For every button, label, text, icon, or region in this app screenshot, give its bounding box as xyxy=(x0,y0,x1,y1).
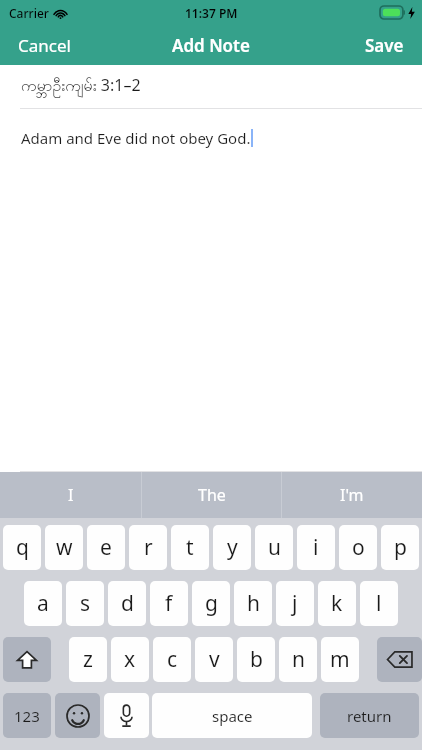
staticText: return xyxy=(347,706,392,726)
staticText: l xyxy=(376,589,382,618)
staticText: e xyxy=(100,533,112,562)
button[interactable]: j xyxy=(276,581,314,626)
staticText: m xyxy=(330,645,350,674)
button[interactable]: f xyxy=(150,581,188,626)
staticText: u xyxy=(268,533,281,562)
staticText: space xyxy=(212,706,253,726)
button[interactable]: u xyxy=(255,525,293,570)
staticText: n xyxy=(292,645,305,674)
staticText: 11:37 PM xyxy=(185,5,238,21)
button[interactable]: m xyxy=(321,637,359,682)
button[interactable]: c xyxy=(153,637,191,682)
button[interactable]: p xyxy=(381,525,419,570)
staticText: o xyxy=(352,533,365,562)
staticText: I xyxy=(68,484,74,506)
staticText: Cancel xyxy=(18,34,71,57)
staticText: k xyxy=(331,589,343,618)
staticText: The xyxy=(198,484,226,506)
staticText: i xyxy=(313,533,319,562)
staticText: z xyxy=(83,645,93,674)
staticText: f xyxy=(165,589,173,618)
staticText: I'm xyxy=(340,484,364,506)
button[interactable]: 123 xyxy=(3,693,51,738)
button[interactable]: space xyxy=(152,693,312,738)
button[interactable]: The xyxy=(142,472,281,518)
button[interactable]: x xyxy=(111,637,149,682)
button[interactable]: k xyxy=(318,581,356,626)
staticText: p xyxy=(394,533,407,562)
staticText: r xyxy=(144,533,153,562)
button[interactable]: w xyxy=(45,525,83,570)
staticText: Carrier xyxy=(9,5,49,21)
button[interactable]: y xyxy=(213,525,251,570)
button[interactable]: Save xyxy=(347,25,422,65)
button[interactable]: z xyxy=(69,637,107,682)
staticText: Save xyxy=(365,34,404,57)
staticText: d xyxy=(121,589,134,618)
staticText: 123 xyxy=(14,706,40,726)
staticText: q xyxy=(16,533,29,562)
button[interactable]: v xyxy=(195,637,233,682)
staticText: h xyxy=(247,589,260,618)
button[interactable]: g xyxy=(192,581,230,626)
button[interactable]: t xyxy=(171,525,209,570)
staticText: c xyxy=(167,645,178,674)
staticText: b xyxy=(250,645,263,674)
button[interactable]: e xyxy=(87,525,125,570)
button[interactable]: Adam and Eve did not obey God. xyxy=(0,109,422,471)
staticText: w xyxy=(56,533,73,562)
staticText: y xyxy=(227,533,238,562)
button[interactable]: q xyxy=(3,525,41,570)
staticText: Add Note xyxy=(172,34,250,57)
button[interactable]: I xyxy=(0,472,141,518)
staticText: v xyxy=(209,645,220,674)
staticText: g xyxy=(205,589,218,618)
staticText: Adam and Eve did not obey God. xyxy=(21,128,251,148)
button[interactable]: a xyxy=(24,581,62,626)
button[interactable]: l xyxy=(360,581,398,626)
staticText: ကမ္ဘာဦးကျမ်း 3:1–2 xyxy=(21,74,141,99)
staticText: j xyxy=(292,589,298,618)
button[interactable]: o xyxy=(339,525,377,570)
button[interactable]: Shift xyxy=(3,637,51,682)
button[interactable]: I'm xyxy=(282,472,421,518)
button[interactable]: h xyxy=(234,581,272,626)
staticText: a xyxy=(37,589,49,618)
button[interactable]: Emoji xyxy=(55,693,100,738)
button[interactable]: Backspace xyxy=(377,637,422,682)
staticText: x xyxy=(124,645,136,674)
button[interactable]: n xyxy=(279,637,317,682)
staticText: t xyxy=(186,533,194,562)
button[interactable]: s xyxy=(66,581,104,626)
button[interactable]: i xyxy=(297,525,335,570)
button[interactable]: Cancel xyxy=(0,25,89,65)
staticText: s xyxy=(80,589,91,618)
button[interactable]: return xyxy=(320,693,419,738)
button[interactable]: b xyxy=(237,637,275,682)
button[interactable]: Dictate xyxy=(104,693,149,738)
button[interactable]: r xyxy=(129,525,167,570)
button[interactable]: ကမ္ဘာဦးကျမ်း 3:1–2 xyxy=(0,65,422,108)
button[interactable]: d xyxy=(108,581,146,626)
